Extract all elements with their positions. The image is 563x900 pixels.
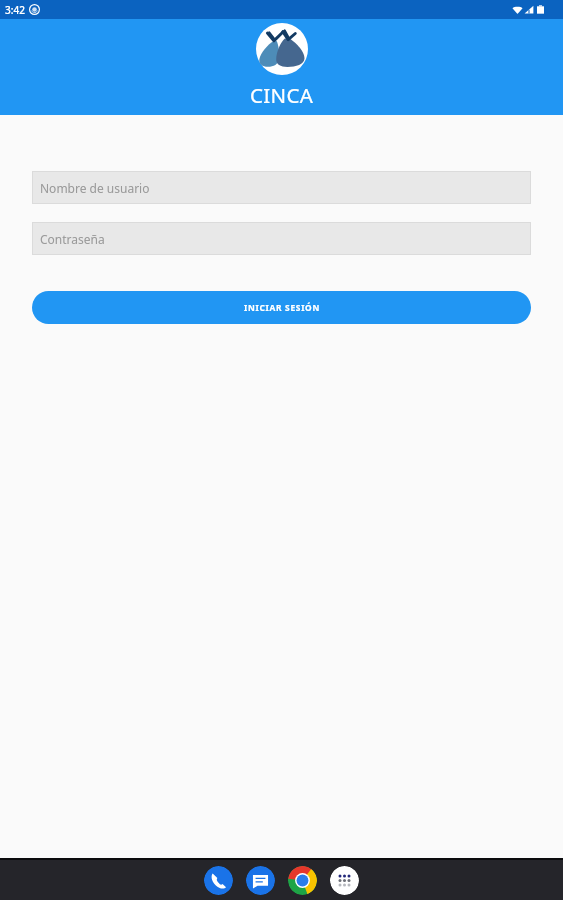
staticText: 3:42	[5, 3, 25, 17]
button[interactable]: Contraseña	[32, 222, 531, 255]
staticText: Contraseña	[40, 231, 105, 247]
staticText: Nombre de usuario	[40, 180, 150, 196]
staticText: CINCA	[250, 81, 314, 109]
button[interactable]: Phone	[204, 866, 233, 895]
staticText: INICIAR SESIÓN	[244, 302, 320, 313]
button[interactable]: Apps	[330, 866, 359, 895]
button[interactable]: Nombre de usuario	[32, 171, 531, 204]
button[interactable]: INICIAR SESIÓN	[32, 291, 531, 324]
button[interactable]: Messages	[246, 866, 275, 895]
button[interactable]: Chrome	[288, 866, 317, 895]
